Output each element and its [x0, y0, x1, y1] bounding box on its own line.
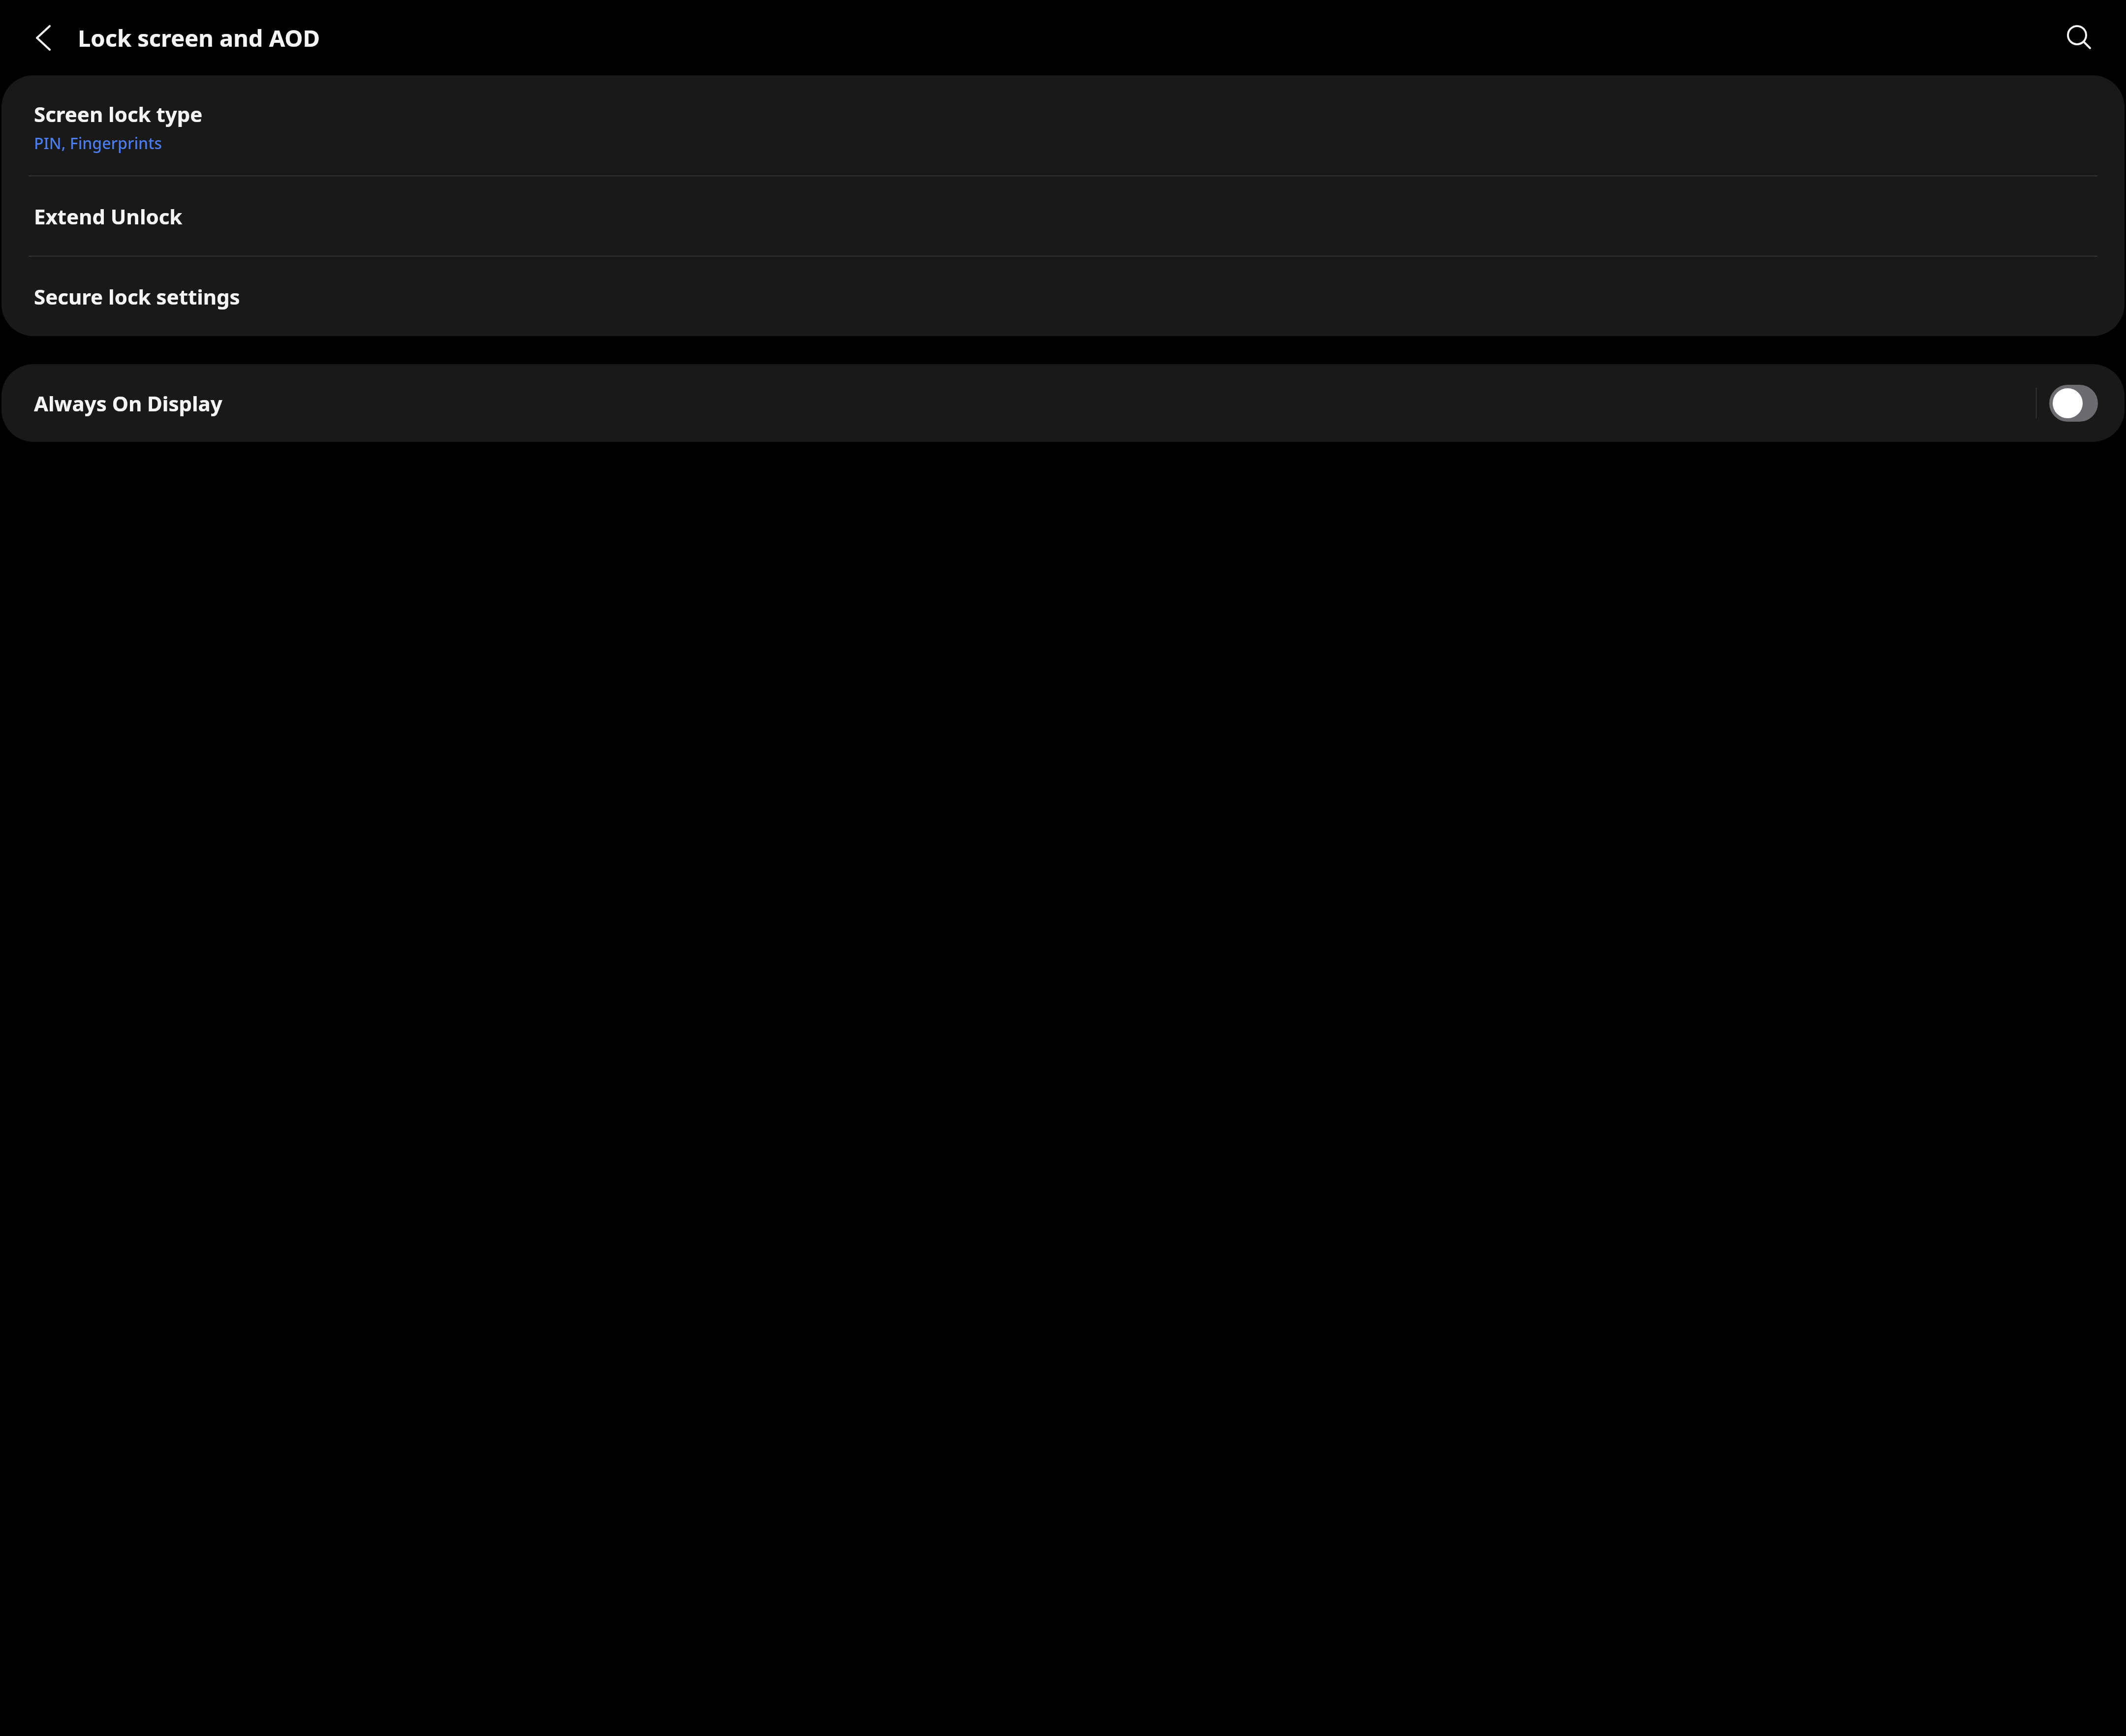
- button[interactable]: Always On Display toggle: [2049, 364, 2098, 442]
- button[interactable]: Back: [23, 17, 64, 59]
- button[interactable]: Extend Unlock: [1, 176, 2125, 256]
- staticText: Lock screen and AOD: [78, 22, 320, 54]
- button[interactable]: Screen lock type: [1, 75, 2125, 176]
- button[interactable]: Search: [2056, 14, 2103, 62]
- staticText: Screen lock type: [34, 100, 203, 128]
- staticText: PIN, Fingerprints: [34, 132, 162, 154]
- staticText: Extend Unlock: [34, 202, 183, 230]
- button[interactable]: Secure lock settings: [1, 256, 2125, 336]
- staticText: Always On Display: [34, 389, 222, 417]
- button[interactable]: Always On Display: [1, 364, 2036, 442]
- staticText: Secure lock settings: [34, 282, 240, 310]
